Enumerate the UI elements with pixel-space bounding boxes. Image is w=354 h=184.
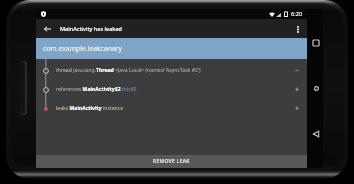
staticText: leaks MainActivity instance — [56, 105, 124, 112]
button[interactable]: More options — [290, 20, 306, 38]
button[interactable]: thread java.lang.Thread <Java Local> (na… — [36, 61, 307, 80]
button[interactable]: Back — [309, 127, 323, 141]
button[interactable]: leaks MainActivity instance — [36, 99, 307, 118]
staticText: MainActivity has leaked — [60, 25, 122, 32]
button[interactable]: Home — [309, 81, 323, 95]
staticText: references MainActivity$2.this$0 — [56, 86, 137, 93]
staticText: + — [295, 104, 300, 114]
staticText: com.example.leakcanary — [43, 44, 122, 53]
staticText: REMOVE LEAK — [153, 158, 190, 165]
button[interactable]: Recents — [309, 36, 323, 50]
staticText: 6:20 — [291, 10, 303, 18]
button[interactable]: com.example.leakcanary — [36, 38, 307, 59]
button[interactable]: references MainActivity$2.this$0 — [36, 80, 307, 99]
staticText: − — [295, 66, 300, 76]
staticText: + — [295, 85, 300, 95]
button[interactable]: REMOVE LEAK — [36, 155, 307, 168]
button[interactable]: Back — [36, 20, 59, 38]
staticText: thread java.lang.Thread <Java Local> (na… — [56, 67, 201, 74]
